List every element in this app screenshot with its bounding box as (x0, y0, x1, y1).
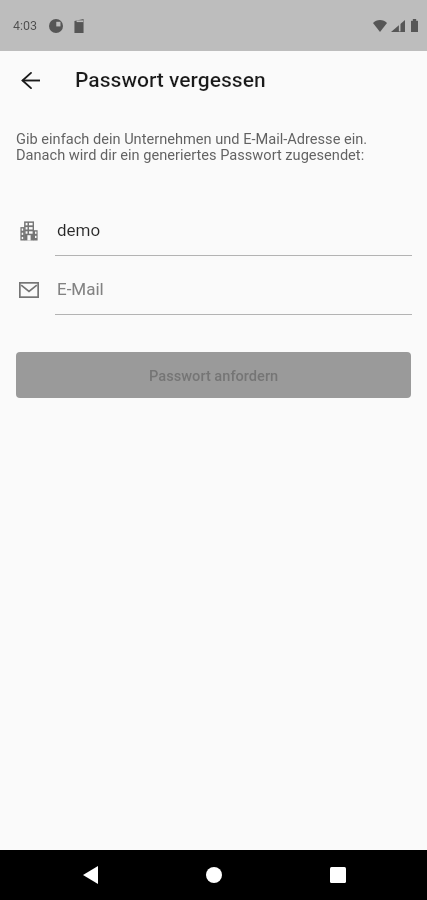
button[interactable]: Recent apps (316, 853, 360, 897)
button[interactable]: demo (0, 220, 427, 270)
button[interactable]: Back (68, 853, 112, 897)
staticText: E-Mail (57, 279, 104, 299)
staticText: Passwort anfordern (149, 367, 279, 384)
staticText: Passwort vergessen (75, 68, 266, 93)
button[interactable]: Home (192, 853, 236, 897)
staticText: Gib einfach dein Unternehmen und E-Mail-… (16, 130, 368, 163)
staticText: demo (57, 220, 101, 240)
button[interactable]: E-Mail (0, 279, 427, 329)
button[interactable]: Passwort anfordern (16, 352, 411, 398)
button[interactable]: Back (8, 57, 54, 103)
staticText: 4:03 (13, 18, 38, 33)
